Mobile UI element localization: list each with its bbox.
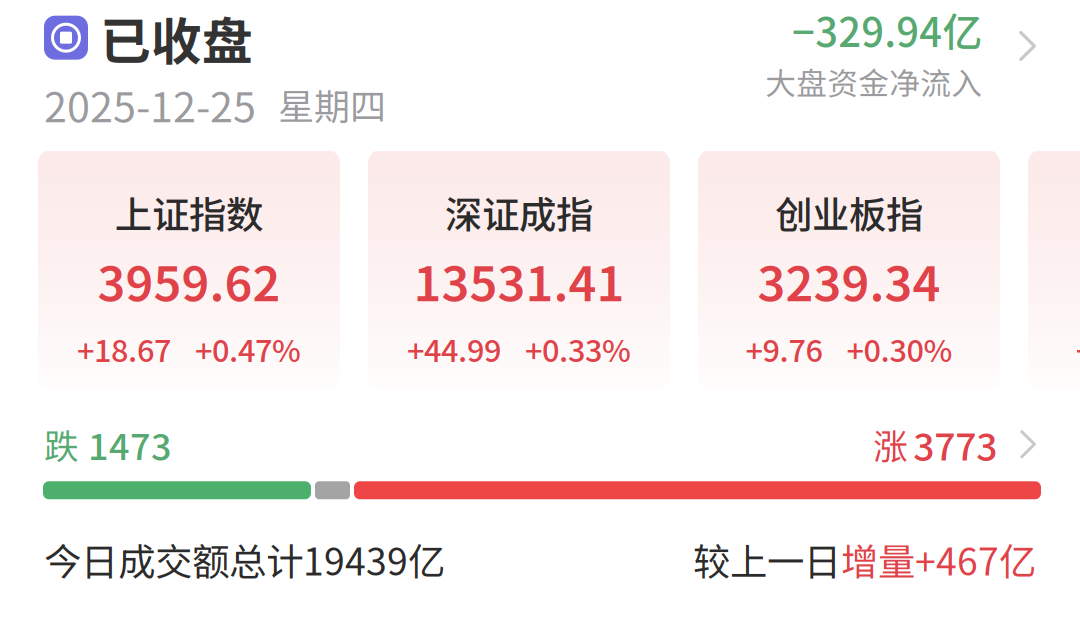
staticText: 已收盘 — [100, 1, 253, 74]
staticText: 跌 — [44, 419, 79, 469]
staticText: +18.67 — [77, 326, 171, 371]
staticText: 今日成交额总计19439亿 — [44, 532, 445, 586]
staticText: 2025-12-25 — [44, 74, 256, 134]
staticText: 上证指数 — [115, 185, 263, 239]
staticText: +0.30% — [846, 326, 952, 371]
staticText: −329.94亿 — [792, 0, 982, 58]
staticText: 创业板指 — [775, 185, 923, 239]
staticText: 大盘资金净流入 — [765, 59, 982, 104]
staticText: 3239.34 — [757, 245, 940, 315]
button[interactable]: 跌 — [0, 390, 1080, 471]
button[interactable]: −329.94亿 — [765, 1, 1036, 97]
staticText: 3773 — [913, 417, 997, 471]
staticText: +467亿 — [915, 532, 1036, 586]
staticText: +0.33% — [525, 326, 631, 371]
staticText: 1473 — [88, 418, 172, 470]
staticText: +44.99 — [407, 326, 501, 371]
staticText: 星期四 — [278, 78, 386, 130]
staticText: 13531.41 — [413, 245, 624, 315]
staticText: +9.76 — [745, 326, 822, 371]
staticText: 增量 — [841, 532, 915, 586]
staticText: +6.10 — [1075, 326, 1080, 371]
staticText: 涨 — [873, 419, 908, 469]
staticText: +0.47% — [195, 326, 301, 371]
staticText: 3959.62 — [97, 245, 280, 315]
staticText: 深证成指 — [445, 185, 593, 239]
staticText: 较上一日 — [693, 532, 841, 586]
